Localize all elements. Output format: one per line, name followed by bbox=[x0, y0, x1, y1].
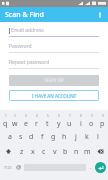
staticText: n bbox=[74, 147, 79, 157]
staticText: 2 bbox=[14, 114, 16, 118]
staticText: v bbox=[53, 147, 57, 157]
staticText: ?123 bbox=[4, 165, 12, 170]
button[interactable]: n bbox=[71, 144, 82, 159]
button[interactable]: 1 bbox=[0, 113, 10, 129]
button[interactable]: 0 bbox=[97, 113, 108, 129]
button[interactable]: d bbox=[26, 129, 37, 144]
button[interactable]: I HAVE AN ACCOUNT bbox=[9, 90, 99, 101]
staticText: l bbox=[97, 132, 99, 142]
staticText: m bbox=[84, 147, 91, 157]
button[interactable]: . bbox=[86, 159, 95, 175]
button[interactable]: 6 bbox=[53, 113, 64, 129]
staticText: y bbox=[57, 119, 61, 129]
staticText: 3 bbox=[25, 114, 27, 118]
button[interactable]: k bbox=[81, 129, 92, 144]
button[interactable]: 2 bbox=[10, 113, 20, 129]
button[interactable]: 4 bbox=[31, 113, 42, 129]
button[interactable]: 3 bbox=[20, 113, 31, 129]
staticText: k bbox=[85, 132, 89, 142]
staticText: w bbox=[12, 119, 18, 129]
staticText: o bbox=[89, 119, 94, 129]
button[interactable]: x bbox=[27, 144, 38, 159]
staticText: . bbox=[90, 163, 92, 171]
staticText: e bbox=[24, 119, 28, 129]
button[interactable]: 9 bbox=[86, 113, 97, 129]
button[interactable]: m bbox=[82, 144, 93, 159]
button[interactable]: z bbox=[16, 144, 27, 159]
button[interactable]: v bbox=[49, 144, 60, 159]
button[interactable]: More options bbox=[93, 8, 107, 22]
staticText: t bbox=[46, 119, 49, 129]
button[interactable]: 7 bbox=[64, 113, 75, 129]
button[interactable]: SIGN UP bbox=[9, 75, 99, 86]
staticText: f bbox=[41, 132, 44, 142]
staticText: s bbox=[19, 132, 23, 142]
staticText: 6 bbox=[58, 114, 60, 118]
button[interactable]: At sign bbox=[14, 159, 24, 175]
staticText: h bbox=[62, 132, 67, 142]
button[interactable]: b bbox=[60, 144, 71, 159]
staticText: 7 bbox=[69, 114, 71, 118]
staticText: 5 bbox=[47, 114, 49, 118]
staticText: SIGN UP bbox=[44, 77, 65, 84]
button[interactable]: 5 bbox=[42, 113, 53, 129]
button[interactable]: Backspace bbox=[93, 144, 108, 159]
staticText: d bbox=[29, 132, 34, 142]
staticText: g bbox=[51, 132, 56, 142]
staticText: 8 bbox=[80, 114, 82, 118]
button[interactable]: Shift bbox=[0, 144, 16, 159]
staticText: j bbox=[75, 132, 77, 142]
staticText: b bbox=[63, 147, 68, 157]
button[interactable]: c bbox=[38, 144, 49, 159]
button[interactable]: a bbox=[5, 129, 15, 144]
button[interactable]: Repeat password bbox=[9, 59, 99, 69]
staticText: q bbox=[3, 119, 8, 129]
staticText: r bbox=[35, 119, 38, 129]
button[interactable]: f bbox=[37, 129, 48, 144]
staticText: 0 bbox=[102, 114, 104, 118]
button[interactable]: 8 bbox=[75, 113, 86, 129]
staticText: z bbox=[20, 147, 24, 157]
staticText: i bbox=[80, 119, 82, 129]
staticText: Email address bbox=[11, 27, 44, 34]
staticText: I HAVE AN ACCOUNT bbox=[32, 93, 77, 99]
staticText: u bbox=[67, 119, 72, 129]
staticText: 4 bbox=[36, 114, 38, 118]
staticText: @ bbox=[16, 163, 22, 171]
button[interactable]: Password bbox=[9, 43, 99, 53]
staticText: 9 bbox=[91, 114, 93, 118]
staticText: Scan & Find bbox=[5, 10, 44, 20]
button[interactable]: ?123 bbox=[2, 159, 14, 175]
button[interactable]: Enter bbox=[95, 162, 106, 173]
button[interactable]: j bbox=[70, 129, 81, 144]
button[interactable]: l bbox=[92, 129, 103, 144]
button[interactable]: h bbox=[59, 129, 70, 144]
staticText: a bbox=[8, 132, 12, 142]
staticText: c bbox=[42, 147, 46, 157]
button[interactable]: Email address bbox=[9, 27, 99, 37]
button[interactable]: s bbox=[15, 129, 26, 144]
staticText: p bbox=[100, 119, 105, 129]
staticText: 1 bbox=[5, 114, 7, 118]
staticText: x bbox=[31, 147, 35, 157]
button[interactable]: g bbox=[48, 129, 59, 144]
staticText: Password bbox=[9, 43, 32, 50]
staticText: Repeat password bbox=[9, 59, 50, 66]
